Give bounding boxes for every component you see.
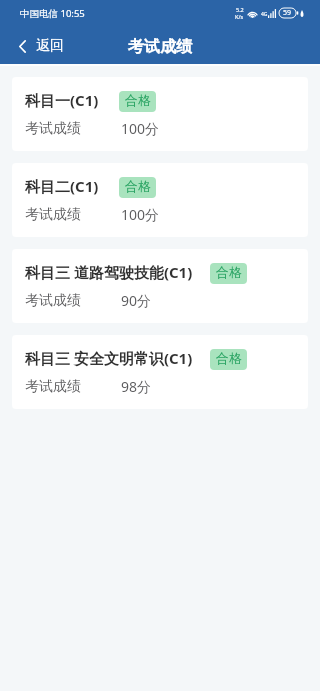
staticText: 考试成绩 (25, 206, 81, 224)
button[interactable]: 科目三 安全文明常识(C1) (12, 335, 308, 409)
button[interactable]: 科目二(C1) (12, 163, 308, 237)
staticText: 100分 (121, 119, 160, 138)
button[interactable]: 科目三 道路驾驶技能(C1) (12, 249, 308, 323)
staticText: 返回 (36, 37, 64, 55)
staticText: 合格 (216, 264, 242, 280)
staticText: 考试成绩 (25, 378, 81, 396)
staticText: 科目三 道路驾驶技能(C1) (25, 262, 193, 282)
button[interactable]: 科目一(C1) (12, 77, 308, 151)
staticText: 科目一(C1) (25, 90, 99, 110)
staticText: 中国电信 10:55 (20, 7, 85, 20)
staticText: 合格 (125, 178, 151, 194)
staticText: K/s (235, 13, 244, 20)
staticText: 4G (261, 11, 268, 18)
staticText: 科目三 安全文明常识(C1) (25, 348, 193, 368)
staticText: 考试成绩 (25, 120, 81, 138)
staticText: 考试成绩 (25, 292, 81, 310)
staticText: 科目二(C1) (25, 176, 99, 196)
staticText: 合格 (125, 92, 151, 108)
button[interactable]: 返回 Back (0, 29, 78, 61)
staticText: 59 (283, 8, 292, 18)
staticText: 98分 (121, 377, 152, 396)
staticText: 100分 (121, 205, 160, 224)
staticText: 90分 (121, 291, 152, 310)
staticText: 5.2 (236, 6, 244, 13)
staticText: 考试成绩 (128, 37, 192, 57)
staticText: 合格 (216, 350, 242, 366)
